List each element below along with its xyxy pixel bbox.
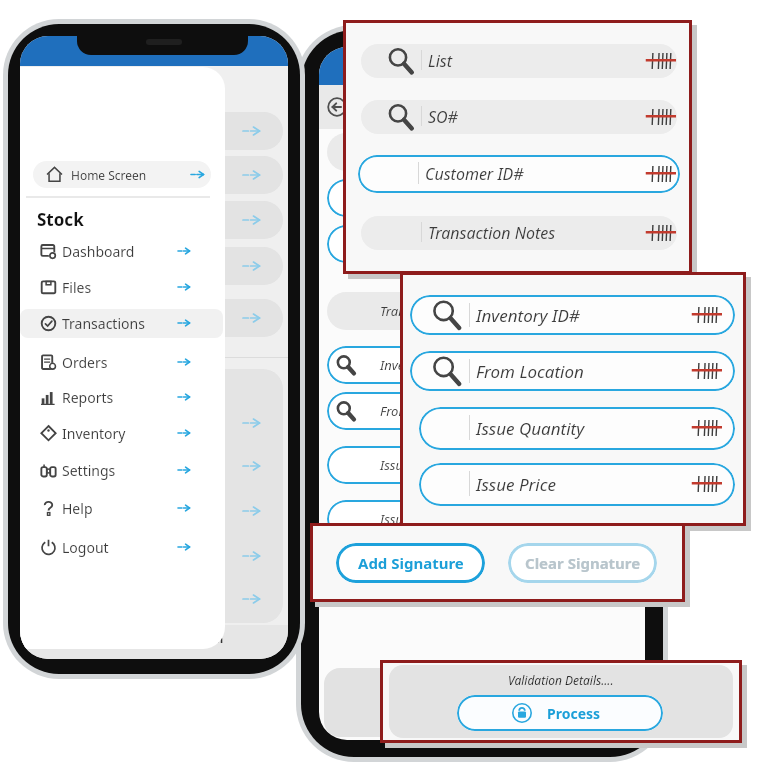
staticText: Inventory xyxy=(62,424,126,443)
staticText: From Location xyxy=(380,402,463,420)
staticText: Transactions xyxy=(62,314,145,333)
button[interactable]: Settings xyxy=(20,456,223,484)
staticText: Transaction Notes xyxy=(380,302,484,320)
staticText: Add Signature xyxy=(358,553,464,573)
staticText: Issue Quantity xyxy=(380,456,463,474)
staticText: Dashboard xyxy=(62,242,135,261)
button[interactable]: List xyxy=(361,44,677,78)
staticText: Process xyxy=(547,704,601,723)
staticText: SO# xyxy=(428,106,458,128)
button[interactable]: Orders xyxy=(20,348,223,376)
button[interactable]: Reports xyxy=(20,383,223,411)
staticText: Home Screen xyxy=(71,167,147,183)
staticText: Help xyxy=(62,499,93,518)
staticText: Customer ID# xyxy=(425,163,524,185)
staticText: Files xyxy=(62,278,92,297)
staticText: n xyxy=(216,631,224,646)
button[interactable]: Transaction Notes xyxy=(361,216,677,250)
button[interactable]: Files xyxy=(20,273,223,301)
staticText: Transaction Notes xyxy=(428,222,556,244)
button[interactable]: Dashboard xyxy=(20,237,223,265)
button[interactable]: Issue Quantity xyxy=(419,407,735,450)
button[interactable]: Transactions xyxy=(20,309,223,337)
staticText: Clear Signature xyxy=(525,553,641,573)
button[interactable]: Help xyxy=(20,494,223,522)
staticText: From Location xyxy=(476,360,584,383)
staticText: Stock xyxy=(37,208,84,230)
staticText: Reports xyxy=(62,388,114,407)
staticText: Validation Details.... xyxy=(508,672,614,688)
staticText: Issue Price xyxy=(476,473,556,496)
button[interactable]: Customer ID# xyxy=(358,155,680,193)
button[interactable] xyxy=(327,97,347,117)
button[interactable]: Add Signature xyxy=(336,543,485,583)
button[interactable]: SO# xyxy=(361,100,677,134)
staticText: List xyxy=(428,50,453,72)
staticText: Settings xyxy=(62,461,116,480)
staticText: Inventory ID# xyxy=(476,304,580,327)
button[interactable]: From Location xyxy=(410,351,735,391)
button[interactable]: Clear Signature xyxy=(508,543,657,583)
button[interactable]: Home Screen xyxy=(33,161,211,188)
button[interactable]: Logout xyxy=(20,533,223,561)
staticText: Inventory ID# xyxy=(380,356,460,374)
button[interactable]: Inventory xyxy=(20,419,223,447)
staticText: Logout xyxy=(62,538,109,557)
button[interactable]: Process xyxy=(457,695,663,731)
button[interactable]: Issue Price xyxy=(419,463,735,506)
staticText: Orders xyxy=(62,353,108,372)
button[interactable]: Inventory ID# xyxy=(410,295,735,335)
staticText: Issue Quantity xyxy=(476,417,585,440)
staticText: Issue Price xyxy=(380,510,442,528)
